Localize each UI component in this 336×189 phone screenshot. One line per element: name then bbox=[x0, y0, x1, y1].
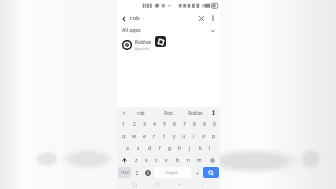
button[interactable]: p bbox=[209, 131, 219, 141]
staticText: App info bbox=[135, 46, 149, 51]
button[interactable]: 7 bbox=[179, 119, 189, 129]
staticText: q bbox=[122, 133, 126, 140]
staticText: ?123 bbox=[121, 170, 129, 175]
staticText: 4 bbox=[153, 121, 156, 128]
button[interactable]: All apps bbox=[117, 25, 220, 36]
staticText: e bbox=[143, 133, 146, 140]
button[interactable]: ?123 bbox=[118, 167, 131, 178]
button[interactable]: rob bbox=[130, 11, 195, 25]
button[interactable]: r bbox=[149, 131, 159, 141]
button[interactable]: English bbox=[154, 167, 191, 178]
button[interactable]: x bbox=[141, 155, 151, 165]
button[interactable]: Backspace bbox=[206, 155, 219, 165]
button[interactable]: t bbox=[159, 131, 169, 141]
button[interactable]: l bbox=[205, 143, 215, 153]
staticText: English bbox=[166, 170, 179, 175]
button[interactable]: Back bbox=[117, 12, 130, 25]
staticText: u bbox=[182, 133, 186, 140]
staticText: rob bbox=[137, 110, 145, 116]
button[interactable]: More options bbox=[207, 12, 219, 24]
staticText: p bbox=[212, 133, 216, 140]
button[interactable]: s bbox=[133, 143, 144, 153]
button[interactable]: 9 bbox=[199, 119, 209, 129]
button[interactable]: Roblox shortcut bbox=[155, 36, 166, 47]
button[interactable]: j bbox=[185, 143, 195, 153]
button[interactable] bbox=[192, 166, 202, 179]
staticText: x bbox=[145, 157, 148, 164]
staticText: Roblox bbox=[188, 110, 203, 116]
button[interactable]: Change language bbox=[142, 166, 153, 179]
button[interactable]: 0 bbox=[209, 119, 219, 129]
button[interactable]: b bbox=[172, 155, 183, 165]
button[interactable]: k bbox=[195, 143, 205, 153]
staticText: f bbox=[159, 145, 161, 152]
button[interactable]: Roblox bbox=[182, 107, 209, 118]
button[interactable]: m bbox=[194, 155, 205, 165]
button[interactable]: Roblox bbox=[117, 36, 220, 54]
staticText: Roblox bbox=[135, 39, 152, 46]
button[interactable]: n bbox=[183, 155, 194, 165]
button[interactable]: Screenshot bbox=[198, 180, 207, 189]
staticText: m bbox=[197, 157, 202, 164]
button[interactable]: 5 bbox=[159, 119, 169, 129]
staticText: Rob bbox=[164, 110, 173, 116]
staticText: k bbox=[199, 145, 202, 152]
button[interactable]: v bbox=[161, 155, 172, 165]
button[interactable]: 1 bbox=[118, 119, 129, 129]
button[interactable]: e bbox=[139, 131, 149, 141]
staticText: z bbox=[135, 157, 138, 164]
button[interactable]: d bbox=[144, 143, 155, 153]
staticText: All apps bbox=[122, 27, 141, 34]
button[interactable]: q bbox=[118, 131, 129, 141]
staticText: i bbox=[193, 133, 195, 140]
button[interactable]: Voice input bbox=[209, 108, 218, 117]
button[interactable]: 3 bbox=[139, 119, 149, 129]
staticText: 1 bbox=[122, 121, 125, 128]
button[interactable]: f bbox=[155, 143, 165, 153]
button[interactable]: 4 bbox=[149, 119, 159, 129]
staticText: 7 bbox=[183, 121, 186, 128]
button[interactable]: rob bbox=[127, 107, 155, 118]
staticText: 3 bbox=[143, 121, 146, 128]
button[interactable]: a bbox=[122, 143, 133, 153]
staticText: 6 bbox=[173, 121, 176, 128]
staticText: l bbox=[209, 145, 211, 152]
staticText: 2 bbox=[133, 121, 136, 128]
button[interactable]: w bbox=[129, 131, 139, 141]
button[interactable]: Search bbox=[203, 167, 219, 178]
staticText: o bbox=[202, 133, 206, 140]
button[interactable]: Rob bbox=[155, 107, 182, 118]
staticText: d bbox=[148, 145, 152, 152]
button[interactable]: y bbox=[169, 131, 179, 141]
staticText: g bbox=[168, 145, 172, 152]
staticText: w bbox=[132, 133, 136, 140]
button[interactable]: Shift bbox=[118, 155, 130, 165]
button[interactable]: z bbox=[131, 155, 141, 165]
staticText: 0 bbox=[213, 121, 216, 128]
button[interactable]: Back bbox=[175, 180, 184, 189]
button[interactable]: Home bbox=[153, 180, 162, 189]
button[interactable]: c bbox=[151, 155, 161, 165]
button[interactable]: 8 bbox=[189, 119, 199, 129]
button[interactable]: 6 bbox=[169, 119, 179, 129]
staticText: 5 bbox=[163, 121, 166, 128]
staticText: b bbox=[176, 157, 180, 164]
staticText: r bbox=[153, 133, 156, 140]
button[interactable]: i bbox=[189, 131, 199, 141]
button[interactable]: g bbox=[165, 143, 175, 153]
staticText: v bbox=[165, 157, 168, 164]
button[interactable]: u bbox=[179, 131, 189, 141]
staticText: h bbox=[178, 145, 182, 152]
button[interactable]: Recents bbox=[130, 180, 139, 189]
button[interactable] bbox=[132, 166, 142, 179]
button[interactable] bbox=[120, 109, 127, 116]
button[interactable]: Clear bbox=[195, 12, 207, 24]
staticText: rob bbox=[130, 14, 140, 22]
staticText: 8 bbox=[193, 121, 196, 128]
staticText: 9 bbox=[203, 121, 206, 128]
button[interactable]: h bbox=[175, 143, 185, 153]
button[interactable]: o bbox=[199, 131, 209, 141]
button[interactable]: 2 bbox=[129, 119, 139, 129]
staticText: j bbox=[189, 145, 191, 152]
staticText: s bbox=[137, 145, 140, 152]
